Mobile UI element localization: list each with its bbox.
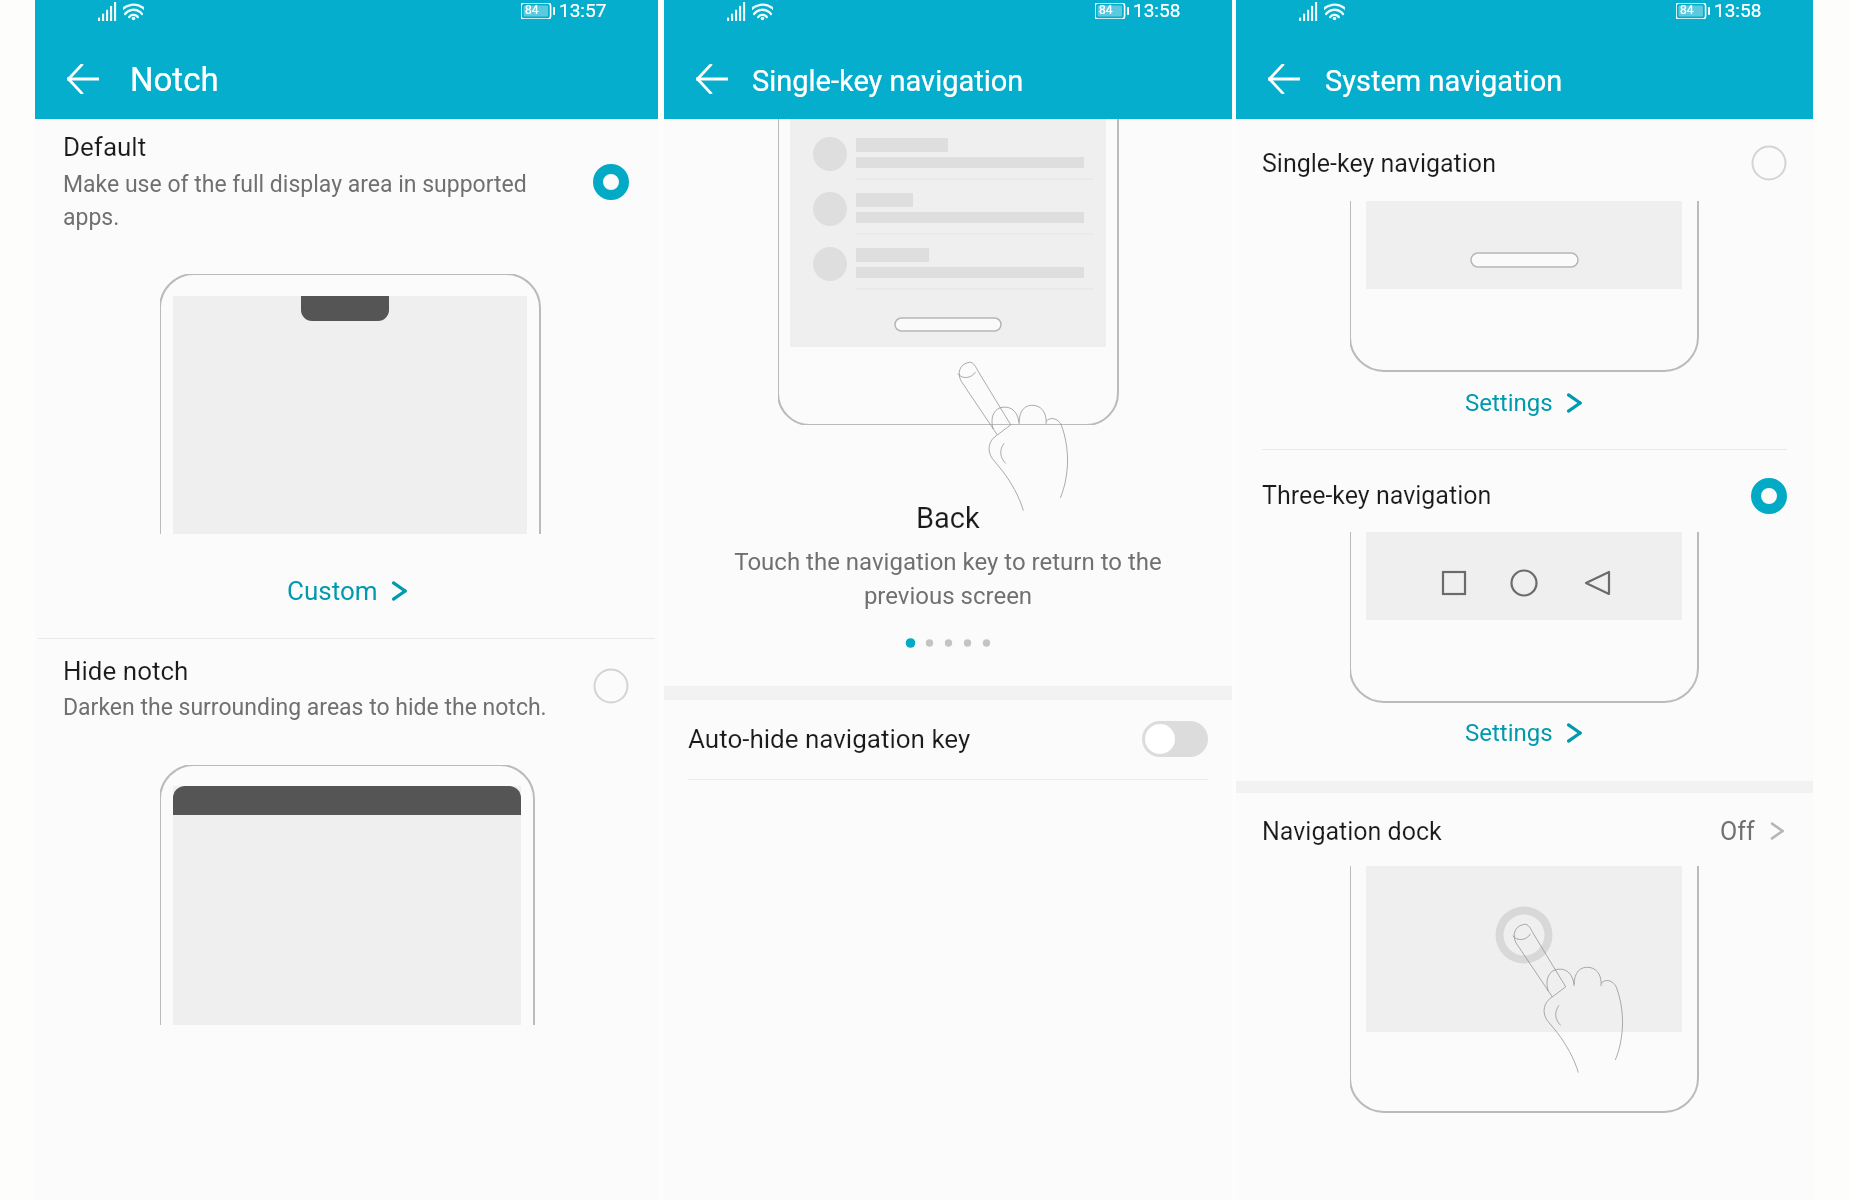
staticText: 84 [1099,3,1113,17]
button[interactable]: Back [58,54,108,104]
staticText: Off [1720,817,1755,846]
staticText: Auto-hide navigation key [688,724,971,754]
button[interactable]: Custom [37,562,658,620]
staticText: System navigation [1325,64,1563,98]
staticText: Custom [287,576,378,606]
staticText: 84 [525,3,539,17]
staticText: 13:58 [1133,0,1181,21]
staticText: Touch the navigation key to return to th… [694,548,1202,610]
button[interactable]: Settings [1236,378,1813,428]
staticText: Darken the surrounding areas to hide the… [63,694,547,721]
staticText: 13:57 [559,0,607,21]
button[interactable]: Back [687,54,737,104]
staticText: Back [916,501,980,535]
staticText: 13:58 [1714,0,1762,21]
staticText: 84 [1680,3,1694,17]
button[interactable]: Auto-hide navigation key [664,700,1232,778]
staticText: Settings [1465,389,1553,417]
button[interactable]: Back [1259,54,1309,104]
button[interactable]: Single-key navigation [1236,119,1813,207]
button[interactable]: Navigation dock [1236,789,1813,873]
staticText: Hide notch [63,656,189,686]
button[interactable]: Three-key navigation [1236,453,1813,538]
staticText: Three-key navigation [1262,481,1492,510]
staticText: Navigation dock [1262,817,1442,846]
staticText: Notch [130,60,219,99]
button[interactable]: Settings [1236,708,1813,758]
staticText: Single-key navigation [1262,149,1496,178]
staticText: Make use of the full display area in sup… [63,171,527,231]
staticText: Single-key navigation [752,64,1024,98]
staticText: Default [63,132,147,162]
staticText: Settings [1465,719,1553,747]
button[interactable]: Hide notch [35,648,658,738]
button[interactable]: Default [35,124,658,242]
